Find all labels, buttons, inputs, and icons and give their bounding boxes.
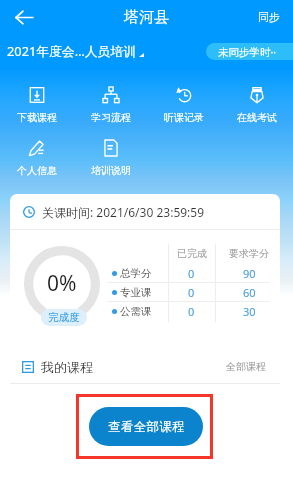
staticText: 0 (188, 304, 195, 319)
staticText: 下载课程 (17, 111, 57, 124)
staticText: 2021年度会…人员培训 (7, 42, 136, 59)
staticText: 同步 (258, 10, 280, 24)
button[interactable]: 未同步学时·· (206, 43, 293, 60)
button[interactable]: 2021年度会…人员培训 (7, 41, 144, 60)
staticText: 在线考试 (237, 111, 277, 124)
staticText: 全部课程 (226, 360, 266, 373)
button[interactable]: 个人信息 (0, 135, 74, 188)
staticText: 60 (243, 285, 256, 300)
staticText: 培训说明 (91, 164, 131, 177)
staticText: 完成度 (48, 311, 80, 324)
button[interactable]: 下载课程 (0, 82, 74, 135)
staticText: 0% (47, 269, 77, 298)
staticText: 公需课 (120, 305, 152, 318)
button[interactable]: 听课记录 (147, 82, 220, 135)
staticText: 90 (243, 266, 256, 281)
staticText: 0 (188, 285, 195, 300)
staticText: 30 (243, 304, 256, 319)
staticText: 关课时间: 2021/6/30 23:59:59 (42, 204, 205, 220)
button[interactable]: 查看全部课程 (89, 407, 203, 446)
staticText: 查看全部课程 (108, 419, 185, 435)
button[interactable]: 全部课程 (222, 356, 270, 377)
staticText: 专业课 (120, 286, 152, 299)
staticText: 要求学分 (229, 247, 269, 260)
button[interactable]: 培训说明 (74, 135, 147, 188)
button[interactable]: 学习流程 (74, 82, 147, 135)
staticText: 个人信息 (17, 164, 57, 177)
staticText: 未同步学时·· (218, 45, 277, 59)
staticText: 学习流程 (91, 111, 131, 124)
button[interactable]: Back (8, 1, 40, 33)
staticText: 我的课程 (41, 359, 93, 375)
staticText: 塔河县 (124, 8, 169, 27)
staticText: 总学分 (120, 267, 152, 280)
staticText: 已完成 (177, 247, 207, 260)
button[interactable]: 在线考试 (220, 82, 293, 135)
staticText: 0 (188, 266, 195, 281)
button[interactable]: 同步 (250, 6, 293, 28)
staticText: 听课记录 (164, 111, 204, 124)
